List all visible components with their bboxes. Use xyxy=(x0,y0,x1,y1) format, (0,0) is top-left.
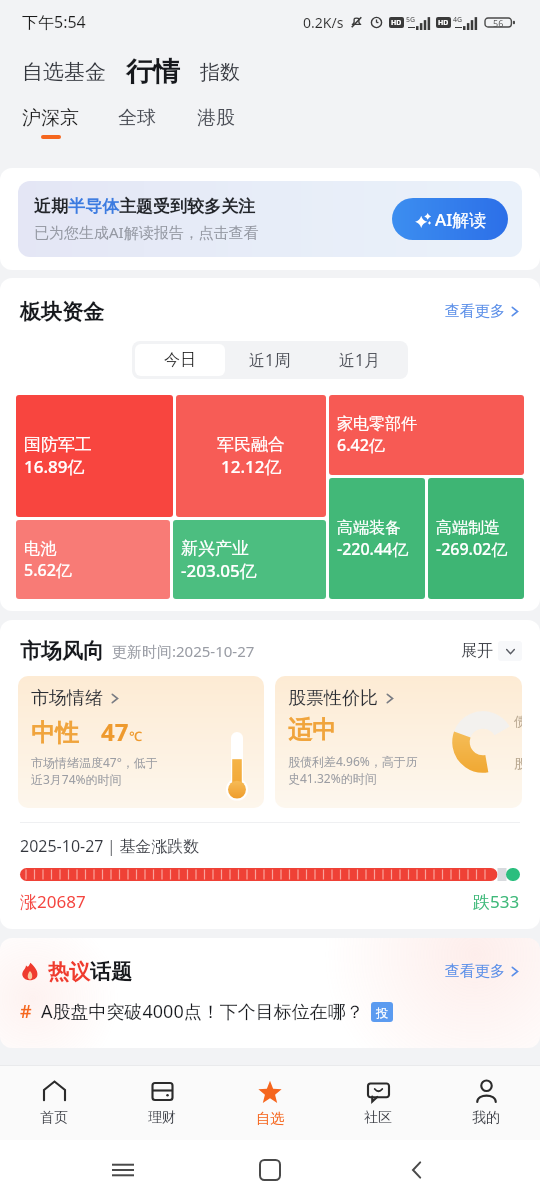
staticText: 指数 xyxy=(200,60,240,85)
staticText: HD xyxy=(438,18,449,28)
staticText: 高端制造 xyxy=(436,518,500,538)
button[interactable]: 全球 xyxy=(114,106,160,130)
staticText: 自选 xyxy=(256,1110,284,1128)
button[interactable]: 近1周 xyxy=(225,344,315,376)
staticText: -220.44亿 xyxy=(337,538,409,560)
button[interactable]: 我的 xyxy=(432,1066,540,1140)
staticText: 市场情绪温度47°，低于 近3月74%的时间 xyxy=(31,754,158,788)
button[interactable]: 今日 xyxy=(135,344,225,376)
button[interactable]: Back xyxy=(393,1146,441,1194)
staticText: 47 xyxy=(101,715,129,748)
button[interactable]: 自选基金 xyxy=(20,53,108,91)
staticText: 股票性价比 xyxy=(288,687,378,710)
button[interactable]: 家电零部件 xyxy=(329,395,524,475)
button[interactable]: Recent apps xyxy=(99,1146,147,1194)
button[interactable]: 高端装备 xyxy=(329,478,425,599)
staticText: 今日 xyxy=(164,350,196,370)
staticText: # xyxy=(20,999,32,1024)
button[interactable]: 国防军工 xyxy=(16,395,173,517)
staticText: 近1周 xyxy=(249,349,291,371)
staticText: 查看更多 xyxy=(445,302,505,321)
staticText: 沪深京 xyxy=(22,106,79,130)
staticText: 国防军工 xyxy=(24,434,92,455)
button[interactable]: 港股 xyxy=(193,106,239,130)
staticText: 已为您生成AI解读报告，点击查看 xyxy=(34,222,259,242)
staticText: 近期半导体主题受到较多关注 xyxy=(34,196,255,217)
button[interactable]: 股票性价比 xyxy=(275,676,522,808)
button[interactable]: 自选 xyxy=(216,1066,324,1140)
staticText: 2025-10-27｜基金涨跌数 xyxy=(20,835,200,857)
staticText: 家电零部件 xyxy=(337,414,417,434)
staticText: 自选基金 xyxy=(22,59,106,85)
staticText: 市场情绪 xyxy=(31,687,103,710)
button[interactable]: 沪深京 xyxy=(18,106,83,139)
staticText: 下午5:54 xyxy=(22,11,86,33)
button[interactable]: 指数 xyxy=(198,54,242,91)
button[interactable]: 高端制造 xyxy=(428,478,524,599)
staticText: 行情 xyxy=(126,55,180,89)
staticText: 港股 xyxy=(197,106,235,130)
button[interactable]: 市场情绪 xyxy=(18,676,264,808)
staticText: 股 xyxy=(514,755,522,771)
staticText: 我的 xyxy=(472,1109,500,1127)
staticText: 首页 xyxy=(40,1109,68,1127)
staticText: A股盘中突破4000点！下个目标位在哪？ xyxy=(41,999,364,1024)
staticText: AI解读 xyxy=(435,208,487,231)
button[interactable]: Home xyxy=(246,1146,294,1194)
button[interactable]: 查看更多 xyxy=(441,298,524,325)
staticText: 中性 xyxy=(31,718,79,748)
button[interactable]: 军民融合 xyxy=(176,395,326,517)
button[interactable]: 展开 xyxy=(459,639,524,663)
staticText: 16.89亿 xyxy=(24,455,85,478)
staticText: 近1月 xyxy=(339,349,381,371)
staticText: -269.02亿 xyxy=(436,538,508,560)
staticText: 市场风向 xyxy=(20,638,104,664)
staticText: ℃ xyxy=(129,727,142,745)
button[interactable]: 近期半导体主题受到较多关注 xyxy=(18,181,522,257)
staticText: HD xyxy=(391,18,402,28)
button[interactable]: 理财 xyxy=(108,1066,216,1140)
staticText: 涨20687 xyxy=(20,890,86,913)
button[interactable]: 新兴产业 xyxy=(173,520,326,599)
staticText: 热议话题 xyxy=(48,959,132,985)
staticText: 社区 xyxy=(364,1109,392,1127)
staticText: 股债利差4.96%，高于历 史41.32%的时间 xyxy=(288,753,418,787)
staticText: 板块资金 xyxy=(20,299,104,325)
button[interactable]: 首页 xyxy=(0,1066,108,1140)
button[interactable]: 查看更多 xyxy=(441,958,524,985)
button[interactable]: AI解读 xyxy=(392,198,508,240)
staticText: 0.2K/s xyxy=(303,13,344,32)
staticText: 新兴产业 xyxy=(181,538,249,559)
staticText: 适中 xyxy=(288,715,336,745)
staticText: 理财 xyxy=(148,1109,176,1127)
button[interactable]: 社区 xyxy=(324,1066,432,1140)
staticText: 6.42亿 xyxy=(337,434,385,456)
staticText: 更新时间:2025-10-27 xyxy=(112,641,255,661)
staticText: -203.05亿 xyxy=(181,559,257,582)
staticText: 4G xyxy=(453,15,463,25)
staticText: 跌533 xyxy=(473,890,520,913)
button[interactable]: 行情 xyxy=(124,51,182,93)
staticText: 军民融合 xyxy=(217,434,285,455)
staticText: 查看更多 xyxy=(445,962,505,981)
staticText: 12.12亿 xyxy=(221,455,282,478)
staticText: 高端装备 xyxy=(337,518,401,538)
staticText: 债 xyxy=(514,713,522,729)
staticText: 展开 xyxy=(461,641,493,661)
staticText: 56 xyxy=(493,17,504,29)
button[interactable]: # xyxy=(20,999,540,1024)
staticText: 5.62亿 xyxy=(24,559,72,581)
staticText: 全球 xyxy=(118,106,156,130)
button[interactable]: 电池 xyxy=(16,520,170,599)
staticText: 投 xyxy=(376,1005,388,1020)
staticText: 5G xyxy=(406,15,416,25)
staticText: 电池 xyxy=(24,539,56,559)
button[interactable]: 近1月 xyxy=(315,344,405,376)
